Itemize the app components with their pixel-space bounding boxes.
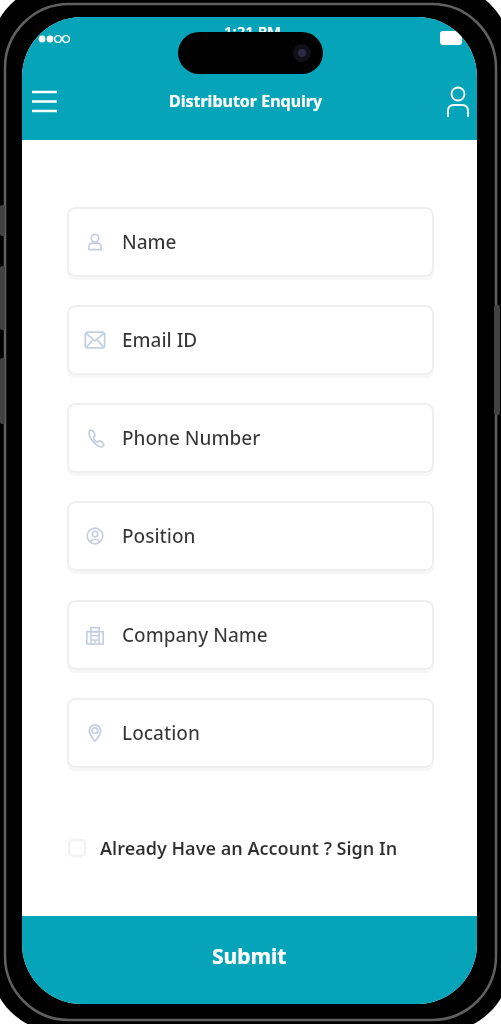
button[interactable]: Phone Number (67, 403, 434, 473)
staticText: Name (122, 229, 177, 255)
button[interactable] (26, 83, 64, 121)
button[interactable]: Already Have an Account ? Sign In (68, 831, 428, 865)
button[interactable] (442, 81, 476, 121)
staticText: Phone Number (122, 425, 261, 451)
staticText: Position (122, 523, 196, 549)
staticText: Company Name (122, 622, 268, 648)
button[interactable]: Submit (22, 916, 477, 1004)
staticText: Location (122, 720, 200, 746)
button[interactable]: Location (67, 698, 434, 768)
staticText: Already Have an Account ? Sign In (100, 836, 398, 861)
staticText: Distributor Enquiry (169, 90, 323, 112)
staticText: Email ID (122, 327, 198, 353)
button[interactable]: Email ID (67, 305, 434, 375)
staticText: 1:21 PM (224, 21, 281, 41)
button[interactable]: Company Name (67, 600, 434, 670)
button[interactable]: Name (67, 207, 434, 277)
button[interactable]: Position (67, 501, 434, 571)
staticText: Submit (212, 942, 287, 971)
